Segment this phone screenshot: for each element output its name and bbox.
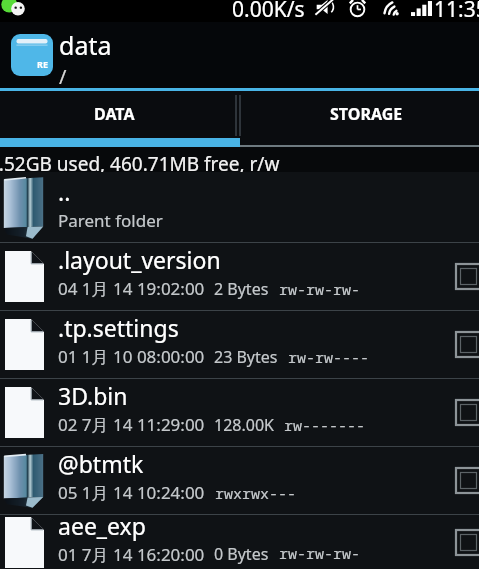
- staticText: RE: [37, 58, 48, 70]
- staticText: rw-rw----: [288, 347, 370, 367]
- staticText: 3.52GB used, 460.71MB free, r/w: [0, 151, 280, 176]
- staticText: rw-rw-rw-: [279, 543, 361, 563]
- staticText: 3D.bin: [58, 380, 128, 411]
- button[interactable]: Select item: [456, 400, 479, 425]
- button[interactable]: Select item: [456, 468, 479, 493]
- staticText: 04 1月 14 19:02:00: [58, 277, 205, 300]
- button[interactable]: RE: [0, 22, 479, 88]
- staticText: 02 7月 14 11:29:00: [58, 413, 205, 436]
- button[interactable]: aee_exp: [0, 515, 479, 569]
- staticText: 23 Bytes: [214, 346, 278, 368]
- staticText: 128.00K: [214, 414, 274, 436]
- staticText: 01 7月 14 16:20:00: [58, 543, 205, 564]
- staticText: .layout_version: [58, 244, 221, 275]
- button[interactable]: Select item: [456, 332, 479, 357]
- button[interactable]: @btmtk: [0, 447, 479, 514]
- staticText: DATA: [94, 103, 135, 125]
- button[interactable]: DATA: [0, 91, 240, 147]
- staticText: aee_exp: [58, 510, 146, 541]
- button[interactable]: STORAGE: [240, 91, 479, 147]
- staticText: 0.00K/s: [232, 0, 305, 17]
- staticText: 05 1月 14 10:24:00: [58, 481, 205, 504]
- staticText: rwxrwx---: [215, 483, 297, 503]
- button[interactable]: ..: [0, 172, 479, 242]
- staticText: data: [59, 28, 112, 62]
- staticText: 2 Bytes: [214, 278, 269, 300]
- staticText: STORAGE: [330, 103, 403, 125]
- button[interactable]: 3D.bin: [0, 379, 479, 446]
- staticText: 11:35: [434, 0, 479, 17]
- button[interactable]: Select item: [456, 264, 479, 289]
- staticText: rw-rw-rw-: [279, 279, 361, 299]
- staticText: /: [59, 63, 67, 90]
- staticText: 0 Bytes: [214, 543, 269, 564]
- staticText: ..: [58, 176, 71, 207]
- staticText: @btmtk: [58, 448, 144, 479]
- button[interactable]: Select item: [456, 530, 479, 555]
- staticText: 01 1月 10 08:00:00: [58, 345, 205, 368]
- staticText: Parent folder: [58, 209, 163, 232]
- button[interactable]: .layout_version: [0, 243, 479, 310]
- staticText: .tp.settings: [58, 312, 179, 343]
- button[interactable]: .tp.settings: [0, 311, 479, 378]
- staticText: rw-------: [284, 415, 366, 435]
